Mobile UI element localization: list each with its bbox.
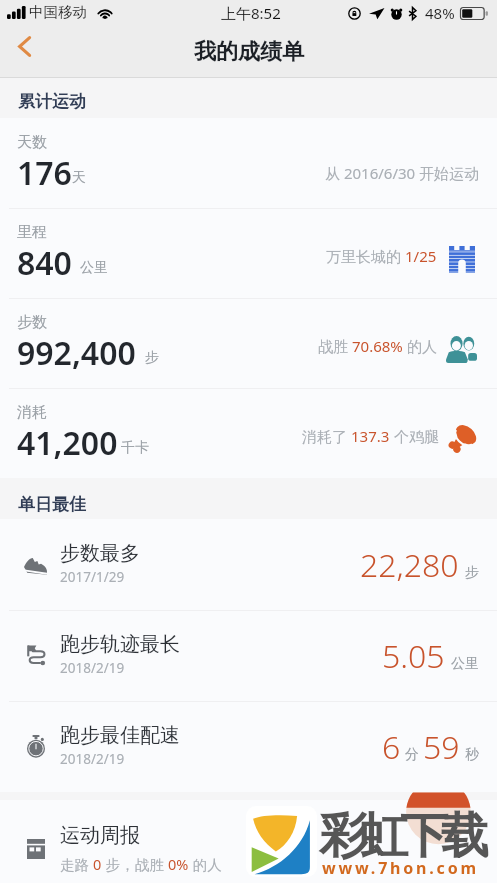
staticText: 消耗 [17, 403, 47, 422]
staticText: 天数 [17, 133, 47, 152]
staticText: 公里 [451, 655, 479, 673]
staticText: 跑步最佳配速 [60, 723, 180, 748]
staticText: 消耗了 [302, 426, 351, 446]
staticText: 我的成绩单 [194, 38, 304, 66]
staticText: 彩虹下载 [323, 806, 485, 866]
staticText: 0% [168, 854, 189, 874]
staticText: 走路 [60, 854, 93, 874]
button[interactable]: 返回 [4, 26, 44, 66]
button[interactable]: 跑步轨迹最长 [0, 610, 497, 701]
button[interactable]: 天数 [0, 118, 497, 208]
staticText: 22,280 [360, 543, 459, 587]
staticText: 6 [382, 725, 401, 769]
staticText: 1/25 [405, 246, 437, 266]
staticText: 公里 [80, 259, 108, 277]
staticText: 累计运动 [18, 91, 86, 112]
staticText: 上午8:52 [221, 3, 281, 23]
staticText: 中国移动 [29, 3, 87, 21]
button[interactable]: 步数最多 [0, 519, 497, 610]
staticText: 步 [465, 564, 479, 582]
staticText: 0 [93, 854, 102, 874]
staticText: 分 [405, 746, 419, 764]
staticText: 2018/2/19 [60, 750, 125, 768]
staticText: 运动周报 [60, 823, 140, 848]
staticText: 从 2016/6/30 开始运动 [325, 163, 480, 183]
staticText: 2018/2/19 [60, 659, 125, 677]
staticText: 41,200 [17, 421, 118, 465]
staticText: 万里长城的 [326, 246, 405, 266]
staticText: 137.3 [351, 426, 390, 446]
staticText: 992,400 [17, 331, 136, 375]
staticText: 天 [72, 169, 86, 187]
staticText: 70.68% [352, 336, 403, 356]
staticText: www.7hon.com [322, 857, 479, 879]
staticText: 个鸡腿 [390, 426, 439, 446]
staticText: 步数最多 [60, 541, 140, 566]
staticText: 的人 [403, 336, 437, 356]
button[interactable]: 步数 [0, 298, 497, 388]
staticText: 5.05 [382, 634, 445, 678]
staticText: 步 [145, 349, 159, 367]
staticText: 秒 [465, 746, 479, 764]
staticText: 176 [17, 151, 72, 195]
button[interactable]: 运动周报 [0, 800, 497, 883]
staticText: 单日最佳 [18, 494, 86, 515]
button[interactable]: 里程 [0, 208, 497, 298]
staticText: 跑步轨迹最长 [60, 632, 180, 657]
staticText: 48% [425, 3, 455, 23]
staticText: 战胜 [318, 336, 352, 356]
staticText: 2017/1/29 [60, 568, 125, 586]
staticText: 步，战胜 [102, 854, 168, 874]
staticText: 千卡 [121, 439, 149, 457]
button[interactable]: 消耗 [0, 388, 497, 478]
staticText: 步数 [17, 313, 47, 332]
staticText: 59 [423, 725, 460, 769]
staticText: 里程 [17, 223, 47, 242]
button[interactable]: 跑步最佳配速 [0, 701, 497, 792]
staticText: 的人 [189, 854, 222, 874]
staticText: 840 [17, 241, 72, 285]
